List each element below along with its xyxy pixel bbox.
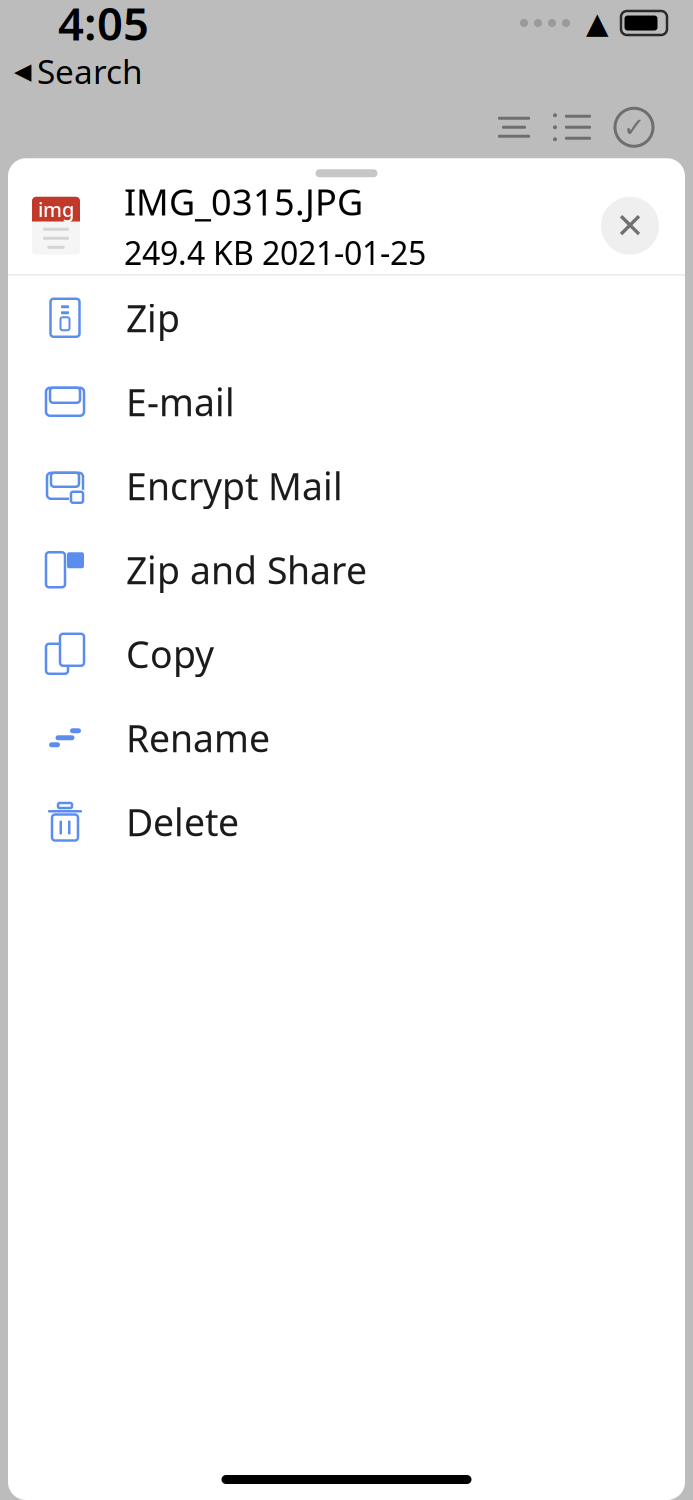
button[interactable]: Copy (8, 612, 685, 696)
button[interactable]: Sort (489, 105, 539, 149)
button[interactable]: E-mail (8, 360, 685, 444)
staticText: ◀ (14, 58, 31, 84)
staticText: 4:05 (58, 0, 149, 53)
button[interactable]: Zip (8, 276, 685, 360)
staticText: Search (37, 49, 143, 93)
button[interactable]: ◀ (0, 46, 143, 96)
staticText: Zip (126, 293, 180, 343)
staticText: Delete (126, 797, 239, 847)
staticText: E-mail (126, 377, 235, 427)
staticText: Zip and Share (126, 545, 367, 595)
staticText: img (38, 196, 74, 223)
button[interactable]: Encrypt Mail (8, 444, 685, 528)
staticText: Encrypt Mail (126, 461, 343, 511)
button[interactable]: Zip and Share (8, 528, 685, 612)
staticText: ✓ (623, 112, 645, 142)
button[interactable]: Close (601, 197, 659, 255)
staticText: 249.4 KB 2021-01-25 (124, 231, 426, 274)
staticText: ✕ (615, 206, 644, 245)
button[interactable]: Select (605, 105, 663, 149)
button[interactable]: Rename (8, 696, 685, 780)
staticText: IMG_0315.JPG (124, 178, 363, 225)
staticText: Rename (126, 713, 270, 763)
staticText: Copy (126, 629, 214, 679)
staticText: ▲ (586, 6, 609, 40)
button[interactable]: Delete (8, 780, 685, 864)
button[interactable]: List view (539, 105, 605, 149)
